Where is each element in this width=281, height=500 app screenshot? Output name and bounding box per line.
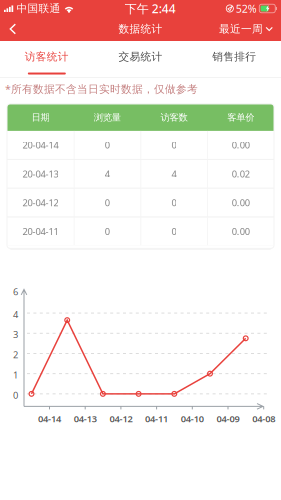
staticText: 0.00	[232, 196, 250, 209]
staticText: 20-04-13	[22, 168, 58, 180]
staticText: 0	[171, 225, 176, 238]
staticText: 0.00	[232, 225, 250, 238]
staticText: 交易统计	[118, 50, 162, 63]
staticText: 浏览量	[94, 112, 121, 123]
staticText: 日期	[31, 112, 49, 123]
staticText: 访客统计	[25, 50, 69, 63]
staticText: 04-14	[38, 412, 61, 425]
staticText: 4	[105, 168, 110, 180]
staticText: 0.00	[232, 139, 250, 151]
staticText: 20-04-12	[22, 196, 58, 209]
staticText: 数据统计	[118, 22, 162, 35]
staticText: 1	[13, 369, 18, 381]
button[interactable]: Back	[0, 18, 28, 40]
staticText: 0	[171, 196, 176, 209]
staticText: *所有数据不含当日实时数据，仅做参考	[5, 82, 198, 96]
staticText: 20-04-11	[22, 225, 58, 238]
staticText: 最近一周	[219, 22, 263, 35]
staticText: 0	[171, 139, 176, 151]
staticText: 04-11	[145, 412, 168, 425]
staticText: 4	[171, 168, 176, 180]
staticText: 2	[13, 348, 18, 361]
staticText: 4	[13, 308, 18, 320]
staticText: 客单价	[227, 112, 254, 123]
staticText: 访客数	[160, 112, 187, 123]
button[interactable]: 访客统计	[0, 41, 94, 77]
staticText: 0.02	[232, 168, 250, 180]
staticText: 04-13	[74, 412, 97, 425]
staticText: 中国联通	[16, 2, 60, 15]
staticText: 销售排行	[212, 50, 256, 63]
staticText: 04-12	[109, 412, 132, 425]
staticText: 下午 2:44	[125, 0, 176, 16]
staticText: 04-09	[216, 412, 239, 425]
button[interactable]: 最近一周	[211, 17, 281, 40]
staticText: 52%	[236, 1, 257, 16]
staticText: 04-08	[252, 412, 275, 425]
button[interactable]: 交易统计	[94, 41, 187, 77]
staticText: 0	[105, 225, 110, 238]
staticText: 0	[105, 139, 110, 151]
staticText: 04-10	[181, 412, 204, 425]
staticText: 3	[13, 328, 18, 341]
staticText: 0	[13, 389, 18, 401]
staticText: 6	[13, 285, 18, 298]
staticText: 20-04-14	[22, 139, 58, 151]
button[interactable]: 销售排行	[187, 41, 281, 77]
staticText: 0	[105, 196, 110, 209]
